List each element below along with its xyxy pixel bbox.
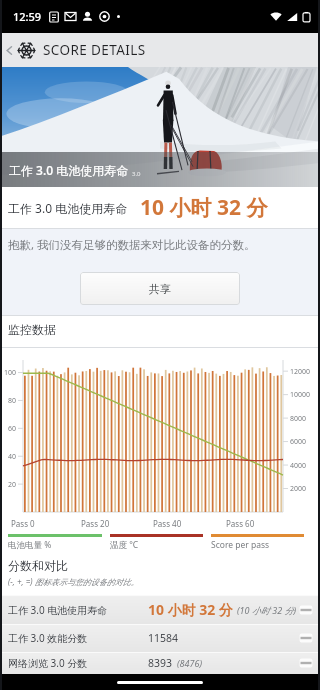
staticText: 3.0 [132, 170, 141, 178]
staticText: 10 小时 32 分 [140, 193, 268, 222]
staticText: 共享 [149, 282, 171, 296]
button[interactable]: 共享 [80, 272, 240, 305]
staticText: 20 [8, 480, 17, 490]
staticText: 电池电量 % [8, 539, 52, 551]
other: Equal to your device [299, 658, 313, 668]
staticText: (10 小时 32 分) [237, 604, 297, 616]
staticText: 10000 [290, 390, 311, 400]
staticText: 分数和对比 [8, 558, 68, 573]
staticText: 4000 [290, 461, 307, 471]
staticText: 工作 3.0 电池使用寿命 [8, 603, 108, 617]
staticText: Pass 0 [11, 518, 35, 529]
staticText: 10 小时 32 分 [148, 600, 233, 619]
staticText: 温度 °C [110, 539, 139, 551]
staticText: (8476) [177, 657, 203, 669]
button[interactable]: Back [0, 33, 18, 67]
staticText: 监控数据 [8, 322, 56, 337]
other: Equal to your device [299, 605, 313, 615]
staticText: Score per pass [211, 539, 270, 551]
staticText: 工作 3.0 电池使用寿命 [9, 162, 129, 178]
staticText: 11584 [148, 631, 179, 645]
staticText: 工作 3.0 电池使用寿命 [8, 200, 128, 216]
staticText: Pass 60 [226, 518, 255, 529]
staticText: (-, +, =) 图标表示与您的设备的对比。 [8, 576, 139, 587]
button[interactable]: 工作 3.0 电池使用寿命 [0, 595, 320, 624]
staticText: 2000 [290, 484, 307, 494]
staticText: 网络浏览 3.0 分数 [8, 656, 88, 670]
staticText: 12:59 [13, 9, 42, 24]
staticText: 工作 3.0 效能分数 [8, 631, 88, 645]
staticText: 12000 [290, 367, 311, 377]
button[interactable]: 工作 3.0 效能分数 [0, 624, 320, 652]
staticText: 6000 [290, 437, 307, 447]
other: Equal to your device [299, 633, 313, 643]
staticText: 抱歉, 我们没有足够的数据来对比此设备的分数。 [8, 237, 256, 253]
staticText: 60 [8, 424, 17, 434]
staticText: 40 [8, 452, 17, 462]
staticText: SCORE DETAILS [43, 41, 146, 59]
staticText: Pass 40 [153, 518, 182, 529]
staticText: 100 [4, 368, 17, 378]
staticText: 80 [8, 396, 17, 406]
staticText: 8393 [148, 656, 173, 670]
staticText: 8000 [290, 414, 307, 424]
button[interactable]: 网络浏览 3.0 分数 [0, 652, 320, 674]
staticText: Pass 20 [81, 518, 110, 529]
